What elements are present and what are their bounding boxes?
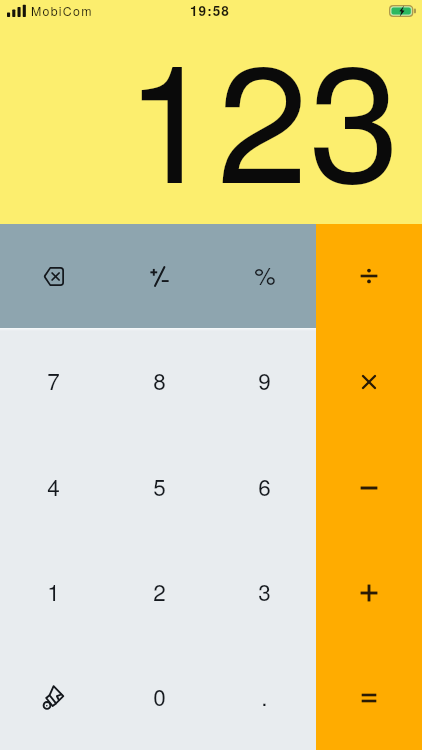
staticText: MobiCom — [31, 2, 93, 20]
button[interactable]: Percent — [211, 224, 316, 328]
staticText: 1 — [47, 575, 60, 607]
button[interactable]: Three — [211, 539, 316, 645]
button[interactable]: Subtract — [316, 434, 422, 540]
staticText: 123 — [125, 0, 401, 230]
button[interactable]: Seven — [0, 328, 105, 434]
staticText: 0 — [153, 680, 166, 712]
button[interactable]: Eight — [105, 328, 210, 434]
staticText: 3 — [258, 575, 271, 607]
staticText: 5 — [153, 470, 166, 502]
button[interactable]: Four — [0, 434, 105, 540]
button[interactable]: Five — [105, 434, 210, 540]
staticText: . — [261, 680, 268, 712]
button[interactable]: Theme — [0, 645, 105, 750]
button[interactable]: One — [0, 539, 105, 645]
button[interactable]: Two — [105, 539, 210, 645]
button[interactable]: Divide — [316, 224, 422, 328]
staticText: 19:58 — [190, 1, 230, 20]
button[interactable]: Plus minus — [105, 224, 210, 328]
staticText: 4 — [47, 470, 60, 502]
button[interactable]: Multiply — [316, 328, 422, 434]
staticText: 2 — [153, 575, 166, 607]
button[interactable]: Add — [316, 539, 422, 645]
button[interactable]: Decimal point — [211, 645, 316, 750]
staticText: 9 — [258, 364, 271, 396]
staticText: 7 — [47, 364, 60, 396]
staticText: % — [254, 257, 276, 291]
button[interactable]: Six — [211, 434, 316, 540]
staticText: 6 — [258, 470, 271, 502]
button[interactable]: Zero — [105, 645, 210, 750]
button[interactable]: Equals — [316, 645, 422, 750]
button[interactable]: Backspace — [0, 224, 105, 328]
staticText: 8 — [153, 364, 166, 396]
button[interactable]: Nine — [211, 328, 316, 434]
